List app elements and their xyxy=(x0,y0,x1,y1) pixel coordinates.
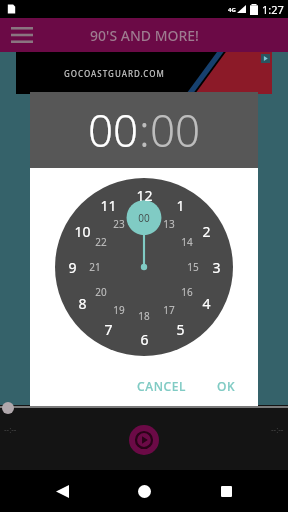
button[interactable]: CANCEL xyxy=(127,372,197,400)
staticText: 7 xyxy=(104,320,113,339)
staticText: 6 xyxy=(140,330,149,349)
staticText: --:-- xyxy=(271,424,284,435)
staticText: 90'S AND MORE! xyxy=(90,26,199,45)
staticText: CANCEL xyxy=(137,378,187,394)
staticText: 21 xyxy=(89,260,101,274)
staticText: 2 xyxy=(202,222,211,241)
button[interactable]: OK xyxy=(207,372,246,400)
staticText: 15 xyxy=(187,260,199,274)
staticText: 23 xyxy=(113,217,125,231)
staticText: 10 xyxy=(74,222,91,241)
staticText: 1 xyxy=(176,196,185,215)
staticText: 8 xyxy=(78,294,87,313)
staticText: GOCOASTGUARD.COM xyxy=(64,68,165,79)
button[interactable]: Play xyxy=(129,425,159,455)
staticText: 13 xyxy=(163,217,175,231)
staticText: 5 xyxy=(176,320,185,339)
staticText: 20 xyxy=(95,285,107,299)
staticText: 14 xyxy=(181,235,193,249)
staticText: 9 xyxy=(68,258,77,277)
staticText: 4G xyxy=(228,6,236,14)
button[interactable]: Back xyxy=(42,471,82,511)
staticText: 00 xyxy=(138,211,150,225)
staticText: 22 xyxy=(95,235,107,249)
button[interactable]: Seek position xyxy=(2,402,14,414)
button[interactable]: 00 xyxy=(88,100,139,160)
staticText: 4 xyxy=(202,294,211,313)
staticText: 11 xyxy=(100,196,117,215)
staticText: 18 xyxy=(138,309,150,323)
staticText: OK xyxy=(217,378,236,394)
staticText: 1:27 xyxy=(262,2,284,17)
button[interactable]: Open navigation menu xyxy=(8,21,36,49)
staticText: --:-- xyxy=(4,424,17,435)
staticText: 16 xyxy=(181,285,193,299)
button[interactable]: Clock face, select hour xyxy=(55,178,233,356)
staticText: : xyxy=(139,100,150,160)
button[interactable]: 00 xyxy=(150,100,201,160)
staticText: 12 xyxy=(136,186,153,205)
staticText: 19 xyxy=(113,303,125,317)
button[interactable]: Home xyxy=(124,471,164,511)
button[interactable]: GOCOASTGUARD.COM xyxy=(16,52,272,94)
button[interactable]: Recent apps xyxy=(206,471,246,511)
staticText: 3 xyxy=(212,258,221,277)
staticText: 17 xyxy=(163,303,175,317)
